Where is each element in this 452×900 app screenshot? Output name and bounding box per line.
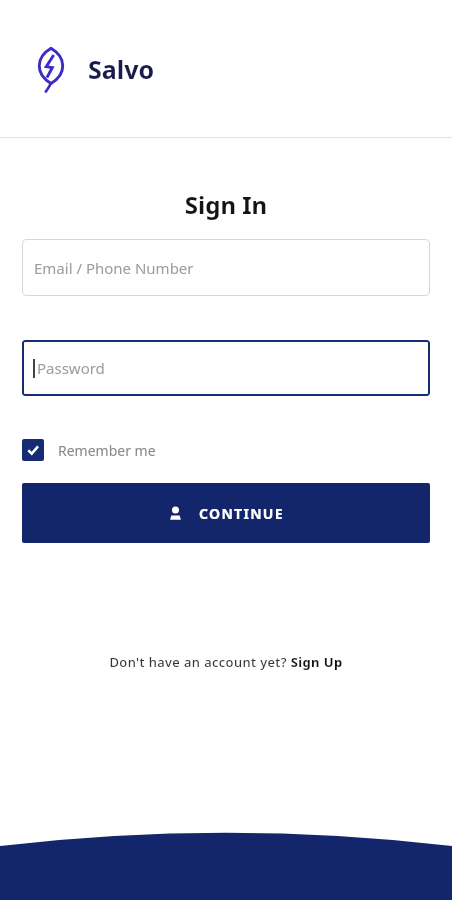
other: Continue [168,506,183,521]
button[interactable]: Password [22,340,430,396]
button[interactable]: Email / Phone Number [22,239,430,296]
staticText: Don't have an account yet? Sign Up [109,653,343,671]
staticText: Remember me [58,441,156,460]
staticText: Email / Phone Number [34,258,194,278]
button[interactable]: Don't have an account yet? Sign Up [0,653,452,671]
button[interactable]: Continue [22,483,430,543]
staticText: Sign In [0,188,452,221]
staticText: Salvo [88,52,155,86]
staticText: CONTINUE [199,504,284,523]
button[interactable]: Salvo [34,45,155,93]
button[interactable]: Remember me [22,439,156,461]
staticText: Password [37,358,105,378]
